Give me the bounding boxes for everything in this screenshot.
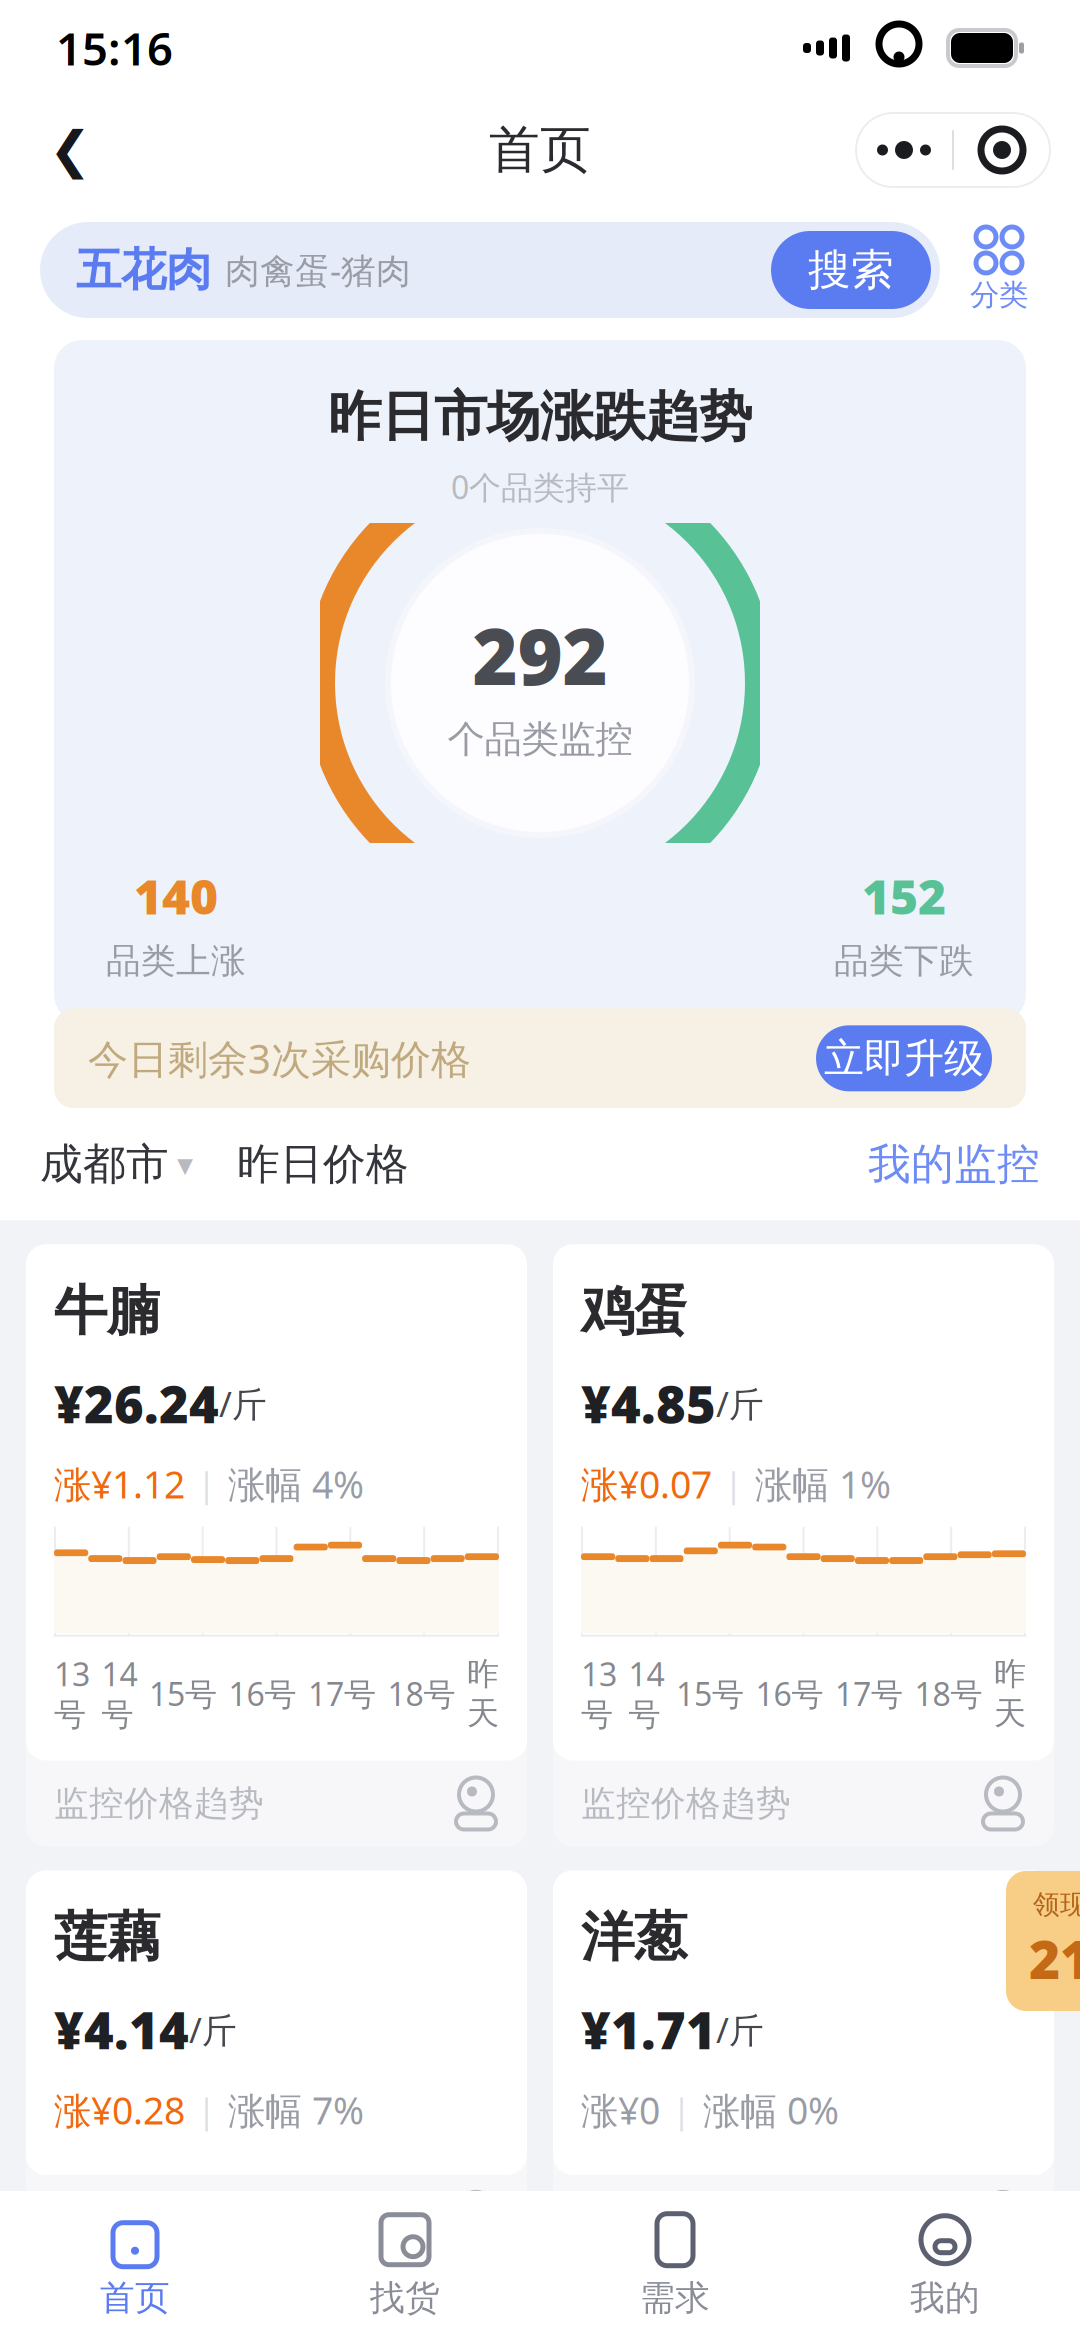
button[interactable]: 鸡蛋 <box>553 1244 1054 1846</box>
staticText: | <box>197 1461 216 1507</box>
staticText: 分类 <box>970 277 1028 313</box>
staticText: 15号 <box>676 1672 744 1715</box>
staticText: 17号 <box>308 1672 376 1715</box>
staticText: 涨¥0 <box>581 2085 660 2135</box>
staticText: 18号 <box>914 1672 982 1715</box>
staticText: ¥4.14 <box>54 1996 189 2063</box>
button[interactable]: 找货 <box>270 2191 540 2341</box>
button[interactable]: 牛腩 <box>26 1244 527 1846</box>
staticText: 监控价格趋势 <box>581 2197 791 2239</box>
staticText: 监控价格趋势 <box>54 1782 264 1825</box>
staticText: 16号 <box>228 1672 296 1715</box>
staticText: 五花肉 <box>76 242 211 298</box>
staticText: 14号 <box>628 1653 664 1734</box>
staticText: 立即升级 <box>824 1034 984 1083</box>
button[interactable]: 需求 <box>540 2191 810 2341</box>
staticText: 莲藕 <box>54 1904 160 1970</box>
button[interactable]: 今日剩余3次采购价格 <box>54 1008 1026 1108</box>
staticText: | <box>197 2087 216 2133</box>
staticText: 品类上涨 <box>106 940 246 982</box>
staticText: 我的监控 <box>868 1138 1040 1190</box>
staticText: 搜索 <box>808 244 894 296</box>
staticText: 找货 <box>370 2277 440 2319</box>
button[interactable]: 首页 <box>0 2191 270 2341</box>
staticText: ¥26.24 <box>54 1370 219 1437</box>
staticText: 个品类监控 <box>447 716 632 762</box>
staticText: ¥1.71 <box>581 1996 716 2063</box>
staticText: 涨¥0.28 <box>54 2085 185 2135</box>
staticText: 肉禽蛋-猪肉 <box>225 247 411 293</box>
staticText: 首页 <box>489 119 591 181</box>
staticText: 292 <box>472 604 607 706</box>
staticText: 21 <box>1029 1923 1080 1994</box>
staticText: 涨幅 0% <box>703 2085 839 2135</box>
staticText: 15:16 <box>56 18 173 78</box>
button[interactable]: 搜索 <box>771 231 931 309</box>
staticText: 18号 <box>387 1672 455 1715</box>
staticText: ¥4.85 <box>581 1370 716 1437</box>
staticText: /斤 <box>189 2007 237 2053</box>
staticText: 监控价格趋势 <box>581 1782 791 1825</box>
button[interactable]: 分类 <box>958 227 1040 313</box>
staticText: 洋葱 <box>581 1904 687 1970</box>
staticText: 16号 <box>755 1672 823 1715</box>
staticText: 领现 <box>1033 1888 1080 1921</box>
staticText: 0个品类持平 <box>451 465 629 508</box>
staticText: 牛腩 <box>54 1278 160 1344</box>
button[interactable]: 我的监控 <box>868 1138 1040 1190</box>
staticText: | <box>672 2087 691 2133</box>
staticText: 成都市 <box>40 1138 169 1190</box>
staticText: 昨日价格 <box>237 1138 409 1190</box>
staticText: ▾ <box>177 1146 193 1182</box>
staticText: 13号 <box>581 1653 617 1734</box>
staticText: 昨天 <box>994 1654 1026 1733</box>
staticText: 昨天 <box>467 1654 499 1733</box>
staticText: 17号 <box>835 1672 903 1715</box>
staticText: /斤 <box>716 2007 764 2053</box>
staticText: 15号 <box>149 1672 217 1715</box>
staticText: 今日剩余3次采购价格 <box>88 1032 471 1085</box>
staticText: 我的 <box>910 2277 980 2319</box>
staticText: 需求 <box>640 2277 710 2319</box>
staticText: 152 <box>862 864 946 928</box>
button[interactable]: 成都市 <box>40 1138 193 1190</box>
staticText: 监控价格趋势 <box>54 2197 264 2239</box>
staticText: 品类下跌 <box>834 940 974 982</box>
button[interactable]: 昨日价格 <box>193 1138 409 1190</box>
staticText: 涨¥1.12 <box>54 1459 185 1509</box>
button[interactable]: 洋葱 <box>553 1870 1054 2261</box>
staticText: 13号 <box>54 1653 90 1734</box>
staticText: /斤 <box>716 1380 764 1426</box>
staticText: 鸡蛋 <box>581 1278 687 1344</box>
staticText: 首页 <box>100 2277 170 2319</box>
button[interactable]: Back <box>30 110 110 190</box>
staticText: 涨幅 4% <box>228 1459 364 1509</box>
button[interactable]: 领现金 <box>1006 1871 1080 2011</box>
button[interactable]: More <box>856 113 952 187</box>
staticText: | <box>724 1461 743 1507</box>
button[interactable]: Close <box>954 113 1050 187</box>
staticText: /斤 <box>219 1380 267 1426</box>
button[interactable]: 我的 <box>810 2191 1080 2341</box>
staticText: 涨¥0.07 <box>581 1459 712 1509</box>
button[interactable]: 莲藕 <box>26 1870 527 2261</box>
staticText: 14号 <box>101 1653 137 1734</box>
staticText: 昨日市场涨跌趋势 <box>328 384 752 449</box>
staticText: 涨幅 1% <box>755 1459 891 1509</box>
staticText: 涨幅 7% <box>228 2085 364 2135</box>
staticText: ❮ <box>49 121 91 179</box>
staticText: 140 <box>134 864 218 928</box>
